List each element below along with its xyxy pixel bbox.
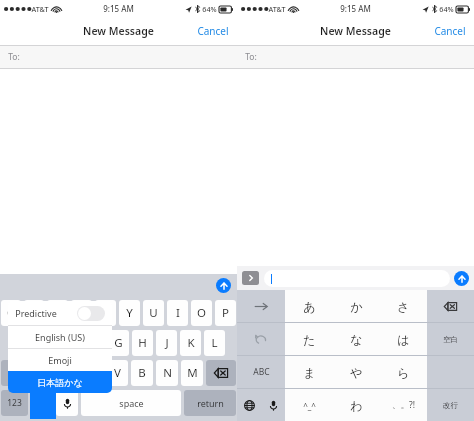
button[interactable]: Undo [237,323,285,355]
staticText: U [149,305,158,321]
staticText: AT&T [31,4,49,14]
button[interactable]: Backspace [206,360,236,386]
button[interactable]: Cancel [426,19,474,43]
staticText: 、。?! [392,399,415,411]
button[interactable]: あ [285,290,333,322]
button[interactable]: Shift [1,360,30,386]
button[interactable]: space [81,390,181,416]
button[interactable]: X [57,360,78,386]
button[interactable]: N [156,360,178,386]
staticText: To: [245,51,257,63]
button[interactable]: わ [333,389,380,421]
staticText: ^_^ [303,400,316,411]
button[interactable]: ABC [237,356,285,388]
staticText: Cancel [434,24,466,38]
button[interactable]: W [24,300,44,326]
staticText: V [114,365,121,381]
staticText: Cancel [197,24,229,38]
button[interactable]: A [12,330,33,356]
staticText: P [222,305,229,321]
staticText: I [176,305,180,321]
button[interactable]: さ [380,290,427,322]
staticText: H [138,335,147,351]
button[interactable]: は [380,323,427,355]
staticText: 9:15 AM [103,3,134,14]
button[interactable]: H [132,330,153,356]
button[interactable] [264,270,450,287]
button[interactable]: T [95,300,116,326]
button[interactable]: I [167,300,188,326]
button[interactable]: Send [454,271,469,286]
button[interactable]: S [36,330,57,356]
staticText: O [197,305,206,321]
button[interactable]: ら [380,356,427,388]
staticText: N [163,365,172,381]
staticText: Q [7,305,16,321]
staticText: AT&T [268,4,286,14]
button[interactable]: ま [285,356,333,388]
button[interactable]: J [156,330,177,356]
button[interactable]: B [131,360,153,386]
staticText: さ [397,299,410,314]
staticText: To: [8,51,20,63]
button[interactable]: English (US) [8,326,112,348]
staticText: 空白 [443,335,458,344]
button[interactable]: G [108,330,129,356]
button[interactable]: 空白 [427,323,474,355]
staticText: ら [397,365,410,380]
button[interactable]: Dictation [56,390,78,416]
button[interactable]: F [84,330,105,356]
button[interactable]: K [180,330,201,356]
button[interactable]: た [285,323,333,355]
button[interactable]: ^_^ [285,389,333,421]
staticText: New Message [320,24,391,38]
button[interactable]: M [181,360,203,386]
button[interactable]: Y [119,300,140,326]
button[interactable]: Predictive [8,301,112,325]
button[interactable]: Move cursor right [237,290,285,322]
button[interactable]: Emoji [8,349,112,371]
button[interactable]: Z [33,360,54,386]
button[interactable]: な [333,323,380,355]
staticText: 改行 [443,401,458,410]
staticText: D [66,335,75,351]
staticText: X [64,365,71,381]
button[interactable]: 日本語かな [8,371,112,393]
button[interactable]: C [81,360,103,386]
other: Move cursor right [254,302,268,311]
button[interactable]: や [333,356,380,388]
staticText: Y [126,305,133,321]
button[interactable]: Expand candidates [242,271,259,285]
button[interactable] [427,290,474,322]
staticText: English (US) [35,331,85,343]
staticText: G [114,335,123,351]
staticText: space [119,397,144,409]
button[interactable]: Next keyboard [237,389,261,421]
other: Undo [255,334,267,345]
button[interactable]: Q [1,300,21,326]
button[interactable]: 改行 [427,389,474,421]
staticText: Z [40,365,47,381]
button[interactable]: か [333,290,380,322]
button[interactable]: 123 [1,390,28,416]
button[interactable]: O [191,300,212,326]
staticText: 9:15 AM [340,3,371,14]
staticText: わ [350,398,363,413]
button[interactable]: To: [0,46,237,68]
button[interactable]: 、。?! [380,389,427,421]
button[interactable]: D [60,330,81,356]
button[interactable]: Dictation [261,389,285,421]
button[interactable]: P [215,300,236,326]
button[interactable]: L [204,330,225,356]
button[interactable]: return [184,390,236,416]
button[interactable]: Cancel [189,19,237,43]
button[interactable]: U [143,300,164,326]
button[interactable]: R [71,300,92,326]
button[interactable]: To: [237,46,474,68]
button[interactable]: E [47,300,68,326]
button[interactable]: V [106,360,128,386]
staticText: New Message [83,24,154,38]
button[interactable]: Send [216,278,231,293]
staticText: 64% [202,4,217,14]
